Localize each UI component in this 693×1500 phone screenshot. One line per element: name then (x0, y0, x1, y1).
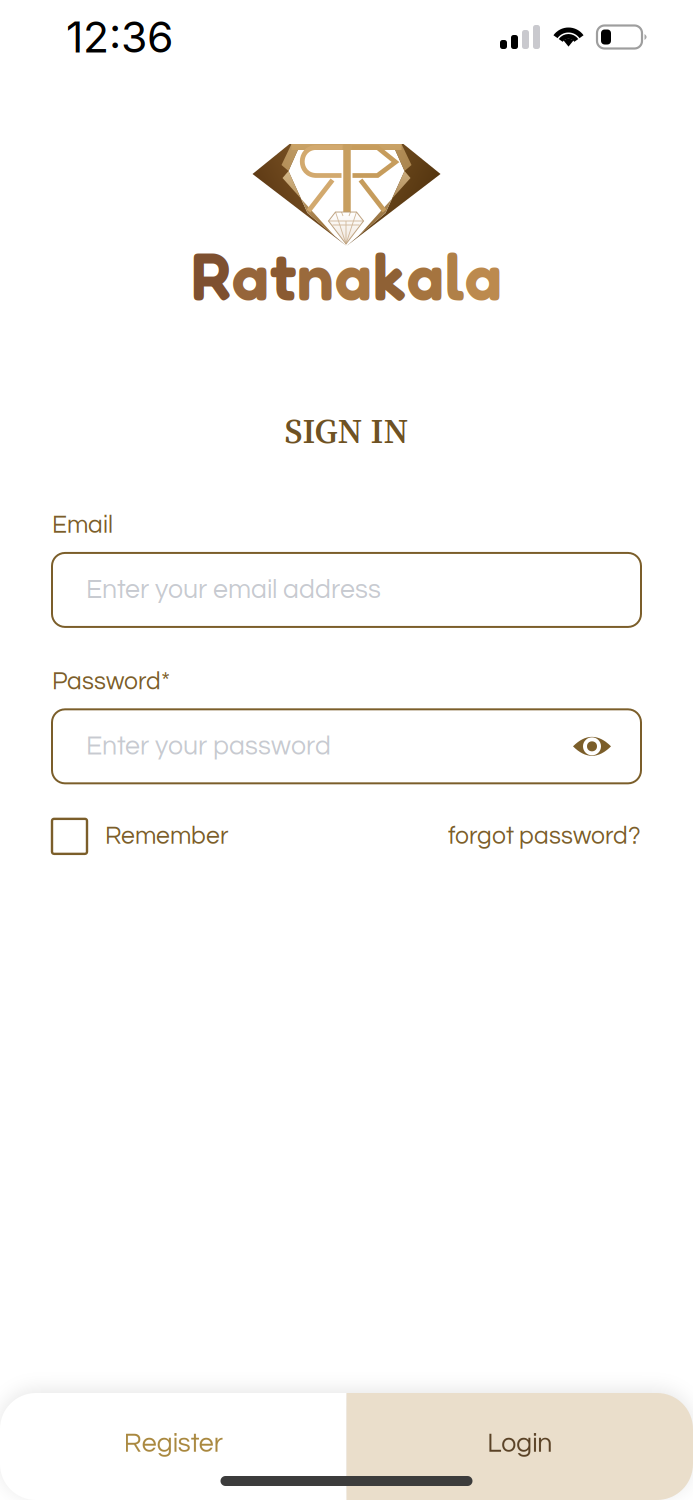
staticText: l (444, 235, 464, 315)
staticText: a (334, 235, 372, 315)
button[interactable]: Register (0, 1393, 346, 1500)
button[interactable]: Remember (52, 816, 352, 856)
staticText: Remember (105, 824, 229, 849)
button[interactable]: forgot password? (381, 816, 641, 856)
staticText: k (372, 235, 406, 315)
staticText: a (464, 235, 502, 315)
staticText: t (269, 235, 296, 315)
button[interactable]: Enter your password (52, 709, 641, 783)
staticText: n (296, 235, 334, 315)
staticText: a (231, 235, 269, 315)
staticText: Email (52, 512, 113, 538)
staticText: SIGN IN (284, 407, 408, 454)
staticText: Password* (52, 669, 170, 694)
staticText: Enter your password (86, 733, 331, 760)
staticText: Register (124, 1430, 223, 1457)
button[interactable]: Enter your email address (52, 553, 641, 627)
staticText: Enter your email address (86, 576, 381, 604)
staticText: R (190, 235, 231, 315)
button[interactable]: Login (346, 1393, 693, 1500)
staticText: forgot password? (448, 824, 641, 849)
staticText: a (406, 235, 444, 315)
staticText: Login (487, 1430, 552, 1457)
staticText: 12:36 (66, 11, 173, 63)
